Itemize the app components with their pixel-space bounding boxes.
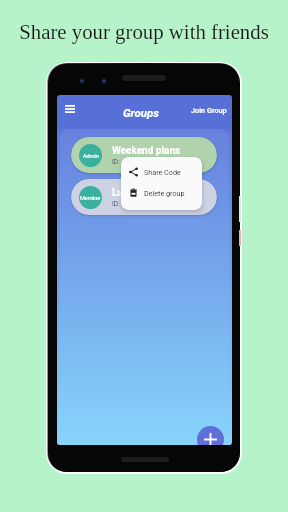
staticText: Weekend plans bbox=[112, 145, 181, 157]
staticText: Share Code bbox=[144, 168, 181, 176]
button[interactable]: Join Group bbox=[187, 101, 231, 120]
staticText: Groups bbox=[123, 106, 160, 119]
button[interactable]: Create group bbox=[197, 426, 224, 445]
staticText: Join Group bbox=[191, 106, 227, 115]
staticText: ID: 4F7C2B bbox=[112, 158, 145, 166]
button[interactable]: Admin bbox=[71, 137, 217, 173]
staticText: Admin bbox=[83, 153, 99, 159]
button[interactable]: Delete group bbox=[121, 182, 202, 203]
button[interactable]: Member bbox=[71, 179, 217, 215]
staticText: ID: A93D18 bbox=[112, 200, 145, 208]
staticText: Lunch crew bbox=[112, 187, 164, 199]
staticText: Share your group with friends bbox=[19, 20, 269, 43]
button[interactable]: Open navigation menu bbox=[61, 102, 79, 116]
staticText: Delete group bbox=[144, 189, 185, 197]
staticText: Member bbox=[80, 195, 101, 201]
button[interactable]: Share Code bbox=[121, 161, 202, 182]
